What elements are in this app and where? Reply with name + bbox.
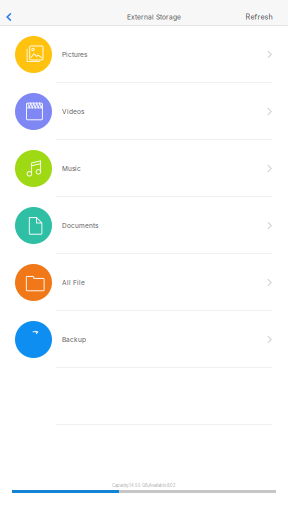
staticText: Refresh	[245, 13, 272, 21]
staticText: All File	[62, 278, 85, 286]
button[interactable]: Music	[0, 140, 288, 197]
staticText: Backup	[62, 335, 86, 343]
button[interactable]: All File	[0, 254, 288, 311]
staticText: Pictures	[62, 50, 87, 58]
button[interactable]: Videos	[0, 83, 288, 140]
button[interactable]: Refresh	[239, 6, 279, 28]
staticText: Videos	[62, 107, 84, 115]
button[interactable]: Backup	[0, 311, 288, 368]
staticText: Music	[62, 164, 81, 172]
button[interactable]: Documents	[0, 197, 288, 254]
staticText: External Storage	[127, 13, 181, 21]
staticText: Capacity:14.55 GB/Available 8.02	[112, 483, 176, 488]
staticText: Documents	[62, 221, 98, 229]
button[interactable]: External Storage	[119, 6, 189, 28]
button[interactable]: Back	[0, 6, 20, 28]
button[interactable]: Pictures	[0, 26, 288, 83]
